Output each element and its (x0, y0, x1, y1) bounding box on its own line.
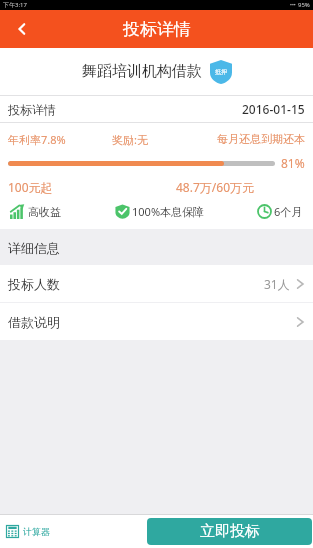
staticText: 立即投标 (200, 522, 260, 541)
staticText: 6个月 (274, 204, 303, 219)
staticText: 95% (298, 1, 310, 9)
staticText: 抵押 (215, 68, 227, 76)
staticText: 投标人数 (8, 276, 60, 292)
staticText: 投标详情 (123, 19, 191, 40)
button[interactable]: Back (0, 10, 44, 48)
staticText: 81% (281, 155, 305, 171)
staticText: 48.7万/60万元 (176, 179, 255, 195)
staticText: 2016-01-15 (242, 101, 305, 117)
staticText: 每月还息到期还本 (201, 132, 305, 146)
staticText: 31人 (264, 276, 290, 292)
button[interactable]: 计算器 (6, 515, 50, 548)
staticText: ••• (290, 2, 296, 9)
button[interactable]: 立即投标 (147, 518, 312, 545)
staticText: 计算器 (23, 526, 50, 537)
staticText: 100元起 (8, 179, 53, 195)
staticText: 年利率7.8% (8, 132, 112, 147)
staticText: 100%本息保障 (132, 204, 205, 219)
staticText: 投标详情 (8, 102, 56, 117)
staticText: 下午3:17 (3, 1, 27, 9)
staticText: 舞蹈培训机构借款 (82, 62, 202, 81)
staticText: 奖励:无 (112, 132, 201, 147)
staticText: 借款说明 (8, 314, 60, 330)
staticText: 详细信息 (8, 240, 60, 256)
button[interactable]: 借款说明 (0, 303, 313, 340)
staticText: 高收益 (28, 205, 61, 219)
button[interactable]: 投标人数 (0, 265, 313, 302)
